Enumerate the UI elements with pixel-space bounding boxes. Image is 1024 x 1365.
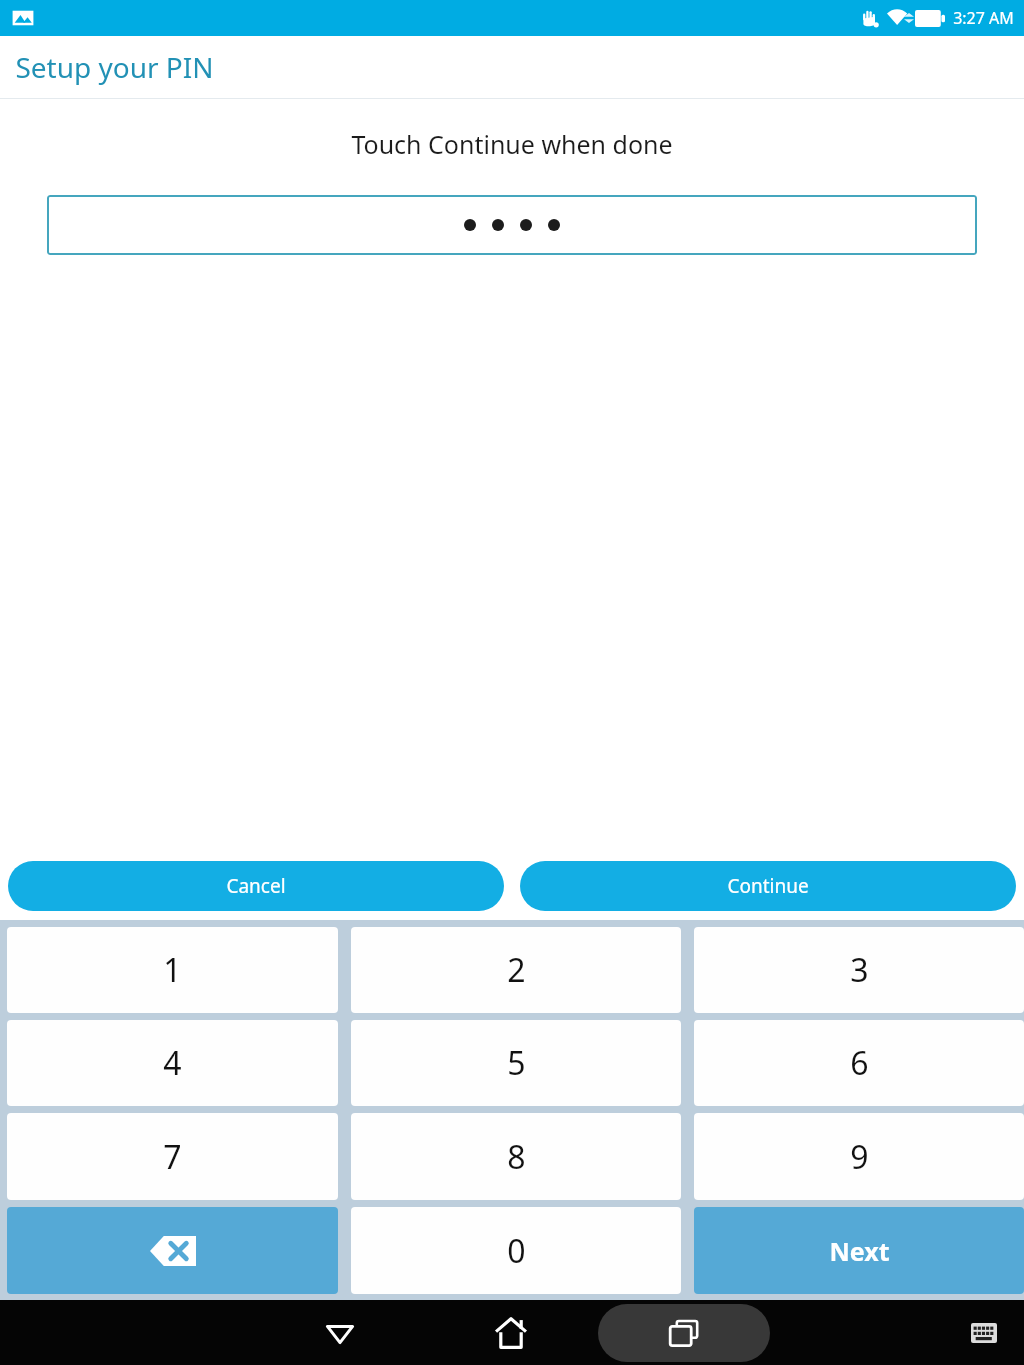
button[interactable]: Continue: [520, 861, 1016, 911]
staticText: 3:27 AM: [953, 7, 1014, 29]
staticText: 4: [163, 1041, 182, 1085]
button[interactable]: 2: [351, 927, 681, 1013]
staticText: Next: [829, 1234, 890, 1268]
button[interactable]: 3: [694, 927, 1024, 1013]
staticText: Continue: [727, 873, 809, 899]
button[interactable]: 1: [7, 927, 338, 1013]
button[interactable]: 0: [351, 1207, 681, 1294]
staticText: 3: [850, 948, 869, 992]
staticText: 9: [850, 1135, 869, 1179]
button[interactable]: Cancel: [8, 861, 504, 911]
button[interactable]: [47, 195, 977, 255]
staticText: 1: [163, 948, 182, 992]
staticText: 2: [507, 948, 526, 992]
staticText: 7: [163, 1135, 182, 1179]
button[interactable]: Switch keyboard: [954, 1303, 1014, 1363]
button[interactable]: 9: [694, 1113, 1024, 1200]
button[interactable]: Back: [290, 1300, 390, 1365]
button[interactable]: 7: [7, 1113, 338, 1200]
staticText: Touch Continue when done: [351, 127, 673, 161]
staticText: 0: [507, 1229, 526, 1273]
staticText: 5: [507, 1041, 526, 1085]
staticText: 6: [850, 1041, 869, 1085]
button[interactable]: Backspace: [7, 1207, 338, 1294]
staticText: Cancel: [226, 873, 286, 899]
staticText: Setup your PIN: [15, 48, 214, 86]
button[interactable]: 8: [351, 1113, 681, 1200]
button[interactable]: Next: [694, 1207, 1024, 1294]
button[interactable]: 4: [7, 1020, 338, 1106]
button[interactable]: Recent apps: [598, 1304, 770, 1362]
staticText: 8: [507, 1135, 526, 1179]
button[interactable]: 6: [694, 1020, 1024, 1106]
button[interactable]: Home: [461, 1300, 561, 1365]
button[interactable]: 5: [351, 1020, 681, 1106]
